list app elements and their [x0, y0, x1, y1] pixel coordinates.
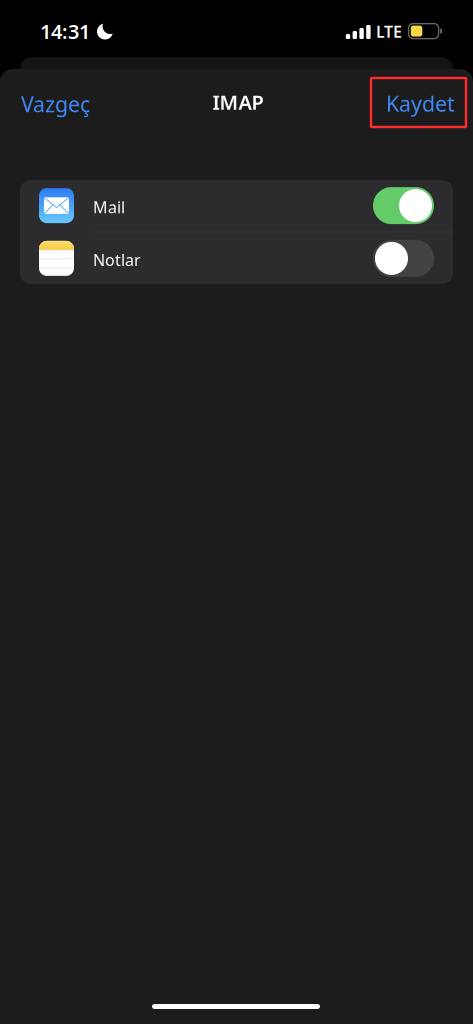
button[interactable]: Mail: [20, 180, 453, 232]
staticText: 14:31: [40, 18, 90, 45]
staticText: Mail: [93, 196, 125, 218]
staticText: Notlar: [93, 249, 141, 270]
staticText: Vazgeç: [21, 90, 90, 118]
button[interactable]: Kaydet: [371, 78, 466, 127]
button[interactable]: Notlar: [373, 240, 434, 277]
staticText: Kaydet: [386, 89, 455, 118]
staticText: LTE: [376, 21, 402, 42]
button[interactable]: Vazgeç: [21, 82, 93, 126]
staticText: IMAP: [212, 89, 263, 115]
button[interactable]: Notlar: [20, 232, 453, 284]
button[interactable]: Mail: [373, 187, 434, 224]
